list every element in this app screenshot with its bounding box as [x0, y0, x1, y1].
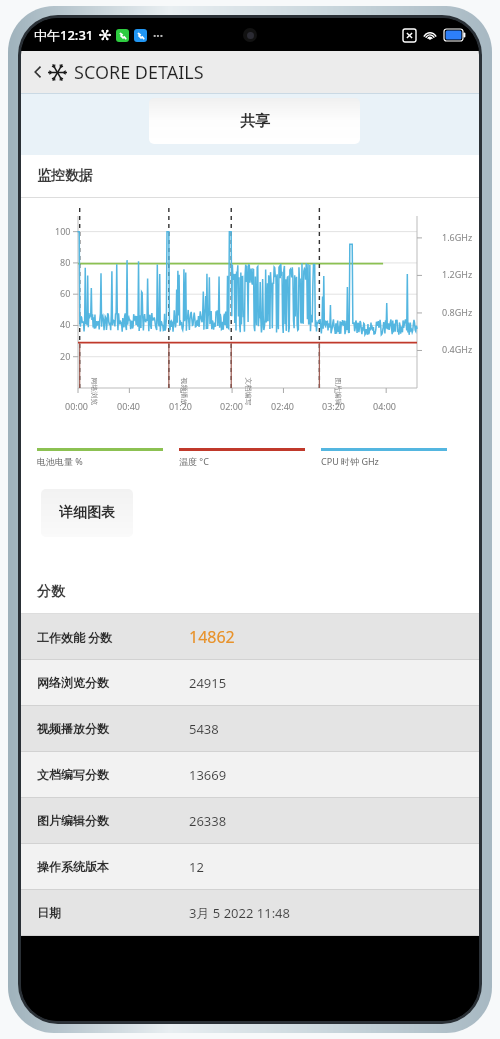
staticText: 12: [189, 858, 204, 876]
staticText: 01:20: [169, 400, 193, 412]
staticText: 00:40: [117, 400, 141, 412]
staticText: ···: [153, 27, 164, 43]
staticText: 04:00: [373, 400, 397, 412]
staticText: 02:00: [220, 400, 244, 412]
button[interactable]: 视频播放分数: [21, 706, 479, 751]
button[interactable]: 网络浏览分数: [21, 660, 479, 705]
staticText: 视频播放: [179, 377, 188, 405]
staticText: 0.8GHz: [442, 306, 473, 318]
staticText: 0.4GHz: [442, 343, 473, 355]
staticText: 14862: [189, 626, 235, 648]
staticText: 13669: [189, 766, 227, 784]
button[interactable]: 文档编写分数: [21, 752, 479, 797]
staticText: 5438: [189, 720, 219, 738]
button[interactable]: 详细图表: [41, 489, 133, 537]
staticText: CPU 时钟 GHz: [321, 455, 379, 467]
staticText: 60: [60, 287, 71, 299]
button[interactable]: 图片编辑分数: [21, 798, 479, 843]
staticText: 共享: [240, 112, 270, 131]
staticText: 02:40: [271, 400, 295, 412]
staticText: 图片编辑: [333, 377, 342, 405]
button[interactable]: 日期: [21, 890, 479, 935]
button[interactable]: 工作效能 分数: [21, 614, 479, 659]
staticText: 03:20: [322, 400, 346, 412]
staticText: 00:00: [65, 400, 89, 412]
staticText: 分数: [37, 583, 65, 601]
staticText: 网络浏览: [89, 377, 98, 405]
button[interactable]: 操作系统版本: [21, 844, 479, 889]
staticText: 网络浏览分数: [37, 675, 109, 690]
staticText: 图片编辑分数: [37, 813, 109, 828]
staticText: 20: [60, 350, 71, 362]
staticText: 电池电量 %: [37, 455, 83, 467]
staticText: 详细图表: [59, 504, 115, 522]
staticText: 日期: [37, 905, 61, 920]
staticText: 100: [55, 225, 71, 237]
staticText: 1.2GHz: [442, 268, 473, 280]
other: Back: [31, 65, 45, 79]
staticText: 24915: [189, 674, 227, 692]
staticText: 40: [60, 318, 71, 330]
staticText: 文档编写分数: [37, 767, 109, 782]
staticText: 温度 °C: [179, 455, 209, 467]
staticText: 视频播放分数: [37, 721, 109, 736]
staticText: 80: [60, 256, 71, 268]
button[interactable]: 共享: [149, 98, 360, 144]
staticText: 1.6GHz: [442, 231, 473, 243]
staticText: 监控数据: [37, 167, 93, 185]
staticText: 文档编写: [243, 377, 252, 405]
staticText: 中午12:31: [34, 26, 94, 44]
staticText: 操作系统版本: [37, 859, 109, 874]
staticText: 工作效能 分数: [37, 629, 113, 645]
button[interactable]: Back: [21, 51, 479, 93]
staticText: 3月 5 2022 11:48: [189, 904, 290, 922]
staticText: SCORE DETAILS: [74, 60, 204, 85]
staticText: 26338: [189, 812, 227, 830]
